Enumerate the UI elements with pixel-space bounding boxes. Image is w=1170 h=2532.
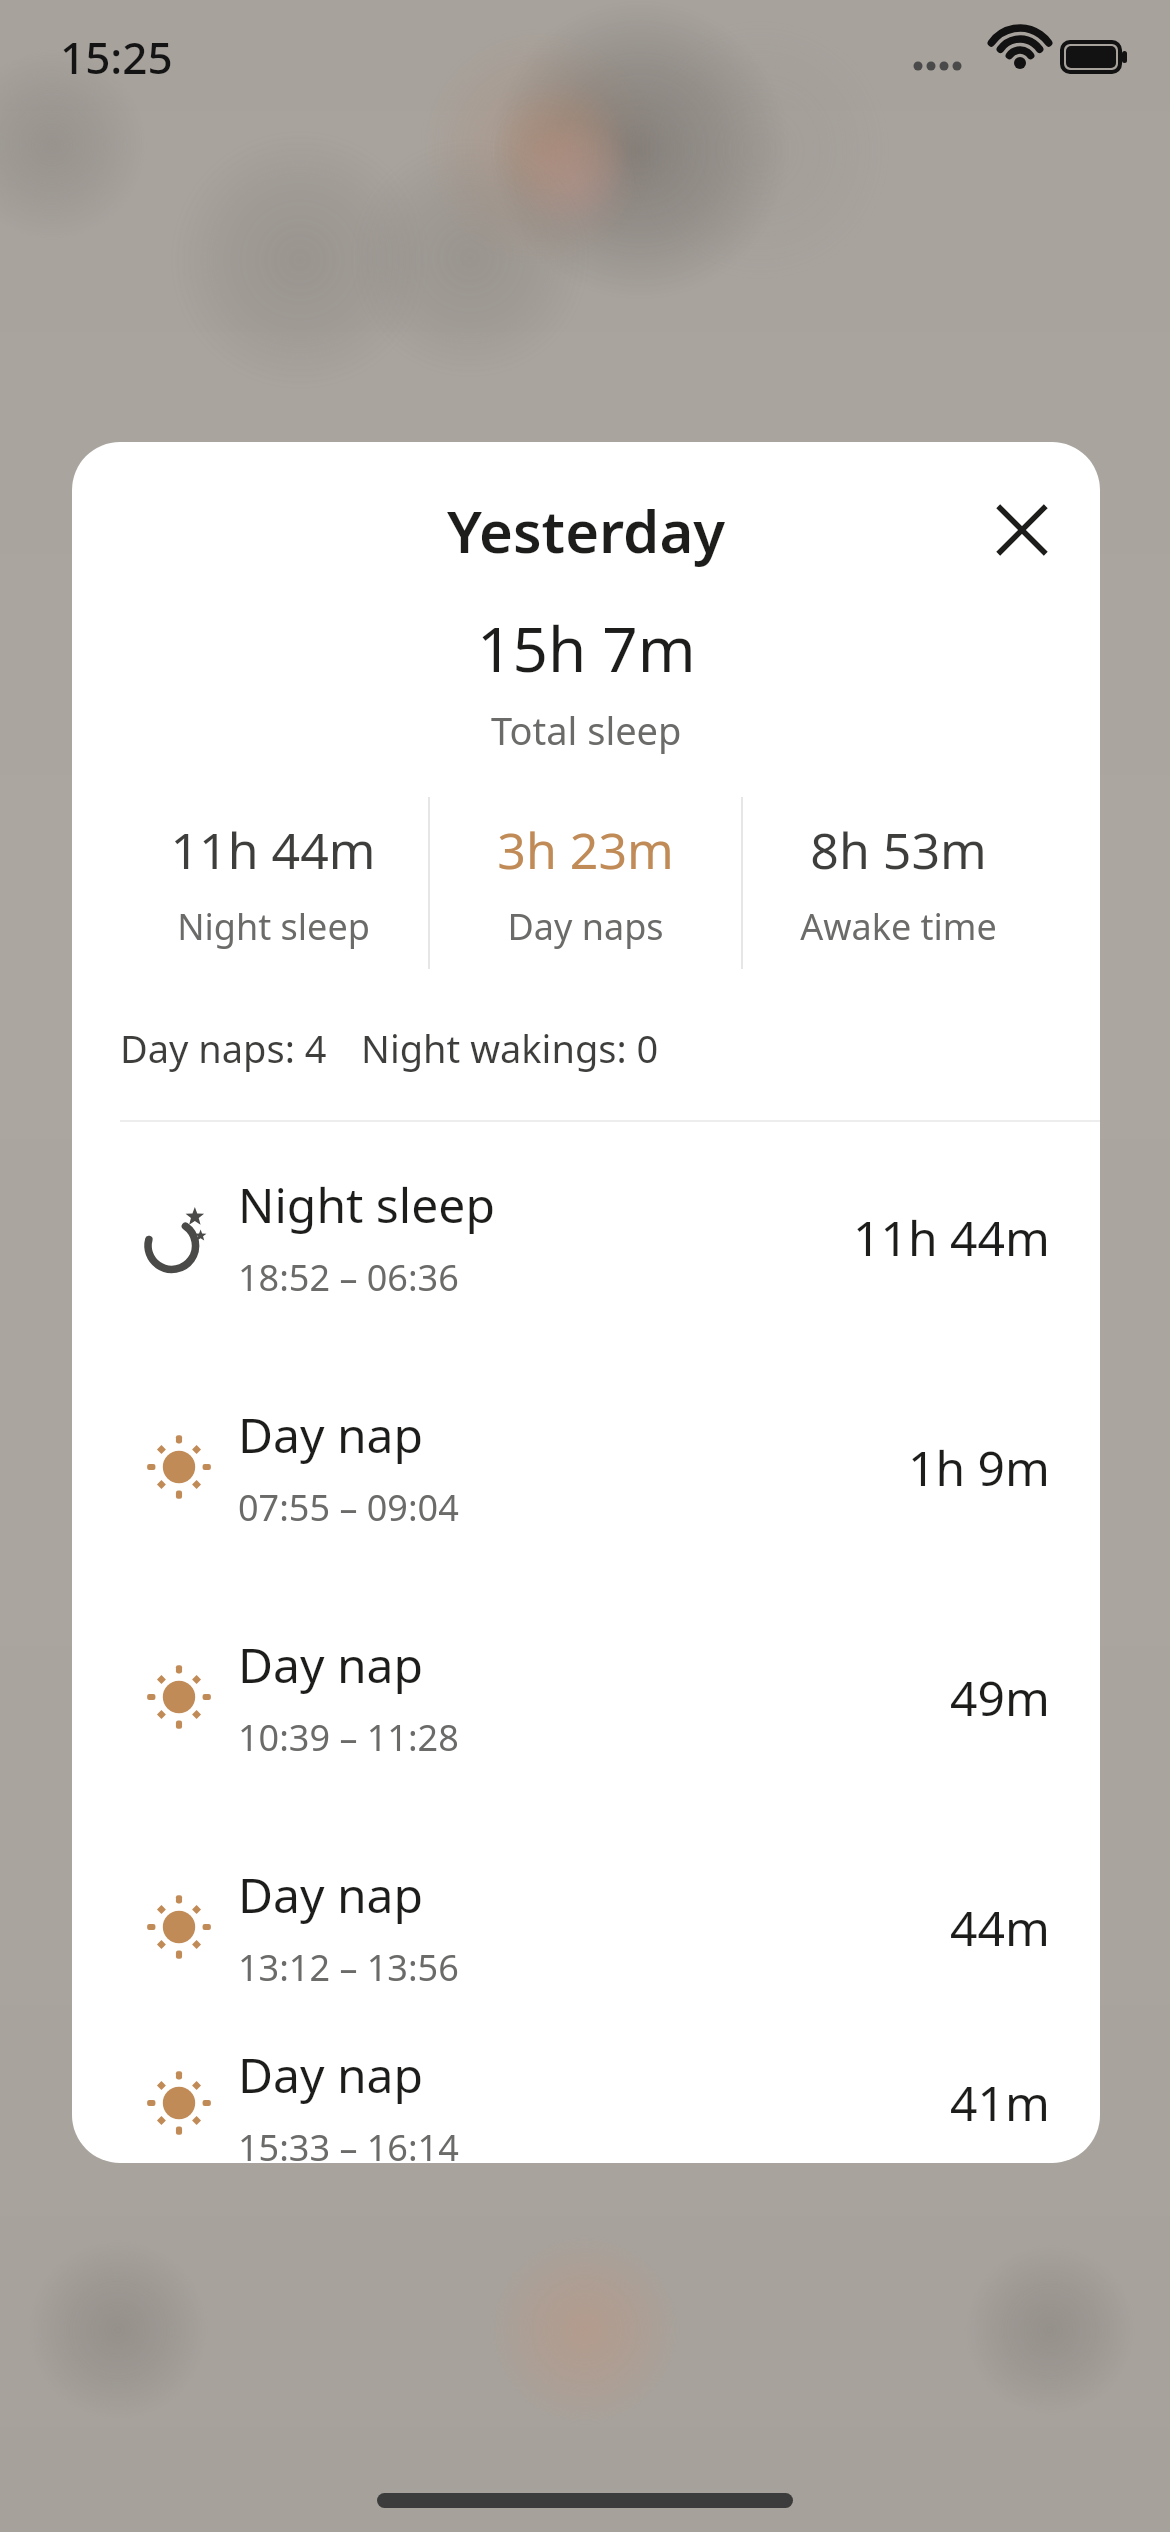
staticText: 41m	[950, 2070, 1050, 2135]
staticText: Day nap	[238, 2042, 424, 2107]
staticText: 11h 44m	[853, 1205, 1050, 1270]
staticText: 15h 7m	[477, 606, 696, 690]
staticText: Day nap	[238, 1862, 424, 1927]
button[interactable]: Night sleep	[72, 1122, 1100, 1352]
button[interactable]: 11h 44m	[118, 816, 428, 951]
button[interactable]: Close	[974, 482, 1070, 578]
staticText: 44m	[950, 1895, 1050, 1960]
button[interactable]: 3h 23m	[430, 816, 741, 951]
button[interactable]: Day nap	[72, 2042, 1100, 2163]
button[interactable]: Day nap	[72, 1352, 1100, 1582]
staticText: 49m	[950, 1665, 1050, 1730]
staticText: Day naps: 4	[120, 1022, 327, 1074]
staticText: 15:25	[60, 27, 173, 87]
staticText: Day nap	[238, 1632, 424, 1697]
staticText: Awake time	[800, 902, 997, 951]
staticText: 13:12 – 13:56	[238, 1943, 459, 1992]
staticText: 3h 23m	[497, 816, 674, 884]
staticText: Yesterday	[447, 491, 726, 570]
staticText: 07:55 – 09:04	[238, 1483, 459, 1532]
staticText: Day naps	[507, 902, 664, 951]
button[interactable]: Day nap	[72, 1812, 1100, 2042]
button[interactable]: Day nap	[72, 1582, 1100, 1812]
staticText: 11h 44m	[170, 816, 376, 884]
staticText: 15:33 – 16:14	[238, 2123, 459, 2163]
staticText: Total sleep	[491, 704, 682, 756]
staticText: Day nap	[238, 1402, 424, 1467]
staticText: Night sleep	[177, 902, 370, 951]
staticText: Night wakings: 0	[361, 1022, 659, 1074]
button[interactable]: 8h 53m	[743, 816, 1054, 951]
staticText: Night sleep	[238, 1172, 495, 1237]
staticText: 18:52 – 06:36	[238, 1253, 459, 1302]
staticText: 8h 53m	[810, 816, 987, 884]
staticText: 10:39 – 11:28	[238, 1713, 459, 1762]
staticText: 1h 9m	[908, 1435, 1050, 1500]
